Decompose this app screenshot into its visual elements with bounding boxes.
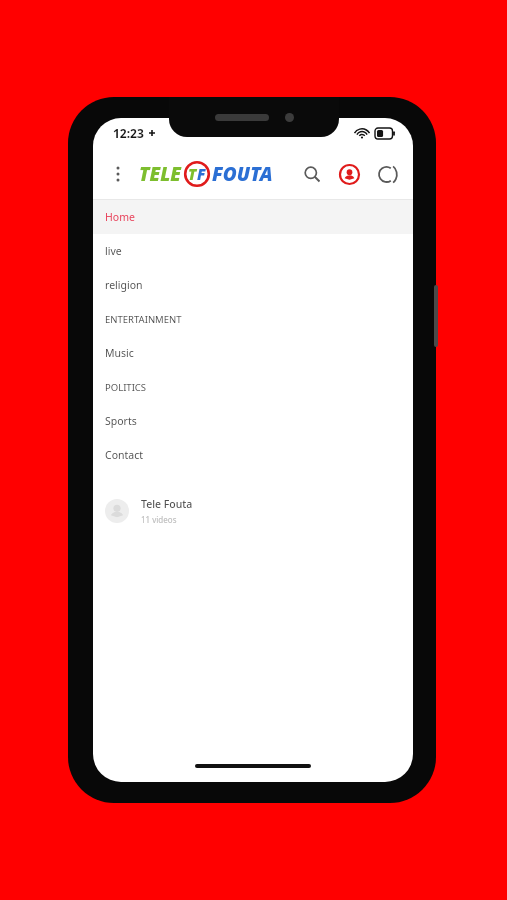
staticText: Sports	[105, 414, 137, 428]
staticText: POLITICS	[105, 381, 147, 394]
staticText: 11 videos	[141, 514, 177, 525]
button[interactable]: POLITICS	[93, 370, 413, 404]
staticText: religion	[105, 278, 143, 292]
button[interactable]: religion	[93, 268, 413, 302]
button[interactable]: ENTERTAINMENT	[93, 302, 413, 336]
button[interactable]: Account	[336, 161, 362, 187]
staticText: FOUTA	[212, 161, 273, 187]
button[interactable]: Home	[93, 200, 413, 234]
staticText: Music	[105, 346, 134, 360]
staticText: Contact	[105, 448, 143, 462]
staticText: T	[188, 164, 197, 184]
staticText: TELE	[139, 161, 181, 187]
button[interactable]: Music	[93, 336, 413, 370]
staticText: ENTERTAINMENT	[105, 313, 182, 326]
button[interactable]: Tele Fouta	[93, 488, 413, 534]
button[interactable]: Dark mode	[373, 161, 399, 187]
button[interactable]: Contact	[93, 438, 413, 472]
button[interactable]: Sports	[93, 404, 413, 438]
staticText: Tele Fouta	[141, 497, 193, 511]
staticText: 12:23	[113, 125, 144, 141]
button[interactable]: Search	[299, 161, 325, 187]
staticText: F	[197, 164, 206, 184]
button[interactable]: Menu	[103, 159, 133, 189]
staticText: live	[105, 244, 122, 258]
button[interactable]: live	[93, 234, 413, 268]
staticText: Home	[105, 210, 135, 224]
